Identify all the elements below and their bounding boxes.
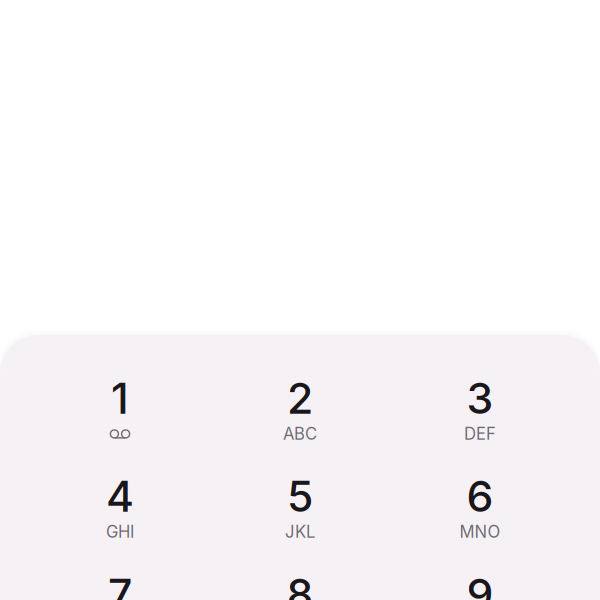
- staticText: 9: [466, 568, 493, 600]
- button[interactable]: 6: [390, 457, 570, 555]
- staticText: JKL: [285, 521, 315, 542]
- button[interactable]: 9: [390, 555, 570, 600]
- staticText: 6: [466, 470, 493, 522]
- button[interactable]: 3: [390, 359, 570, 457]
- staticText: 2: [287, 372, 313, 424]
- staticText: 1: [111, 372, 129, 424]
- staticText: 5: [287, 470, 313, 522]
- staticText: 4: [106, 470, 134, 522]
- button[interactable]: 8: [210, 555, 390, 600]
- button[interactable]: 2: [210, 359, 390, 457]
- staticText: 8: [286, 568, 313, 600]
- button[interactable]: 4: [30, 457, 210, 555]
- staticText: GHI: [106, 521, 134, 542]
- staticText: 7: [108, 568, 132, 600]
- button[interactable]: 7: [30, 555, 210, 600]
- staticText: DEF: [464, 423, 496, 444]
- staticText: ABC: [283, 423, 317, 444]
- staticText: 3: [466, 372, 493, 424]
- button[interactable]: 5: [210, 457, 390, 555]
- button[interactable]: 1: [30, 359, 210, 457]
- staticText: MNO: [459, 521, 500, 542]
